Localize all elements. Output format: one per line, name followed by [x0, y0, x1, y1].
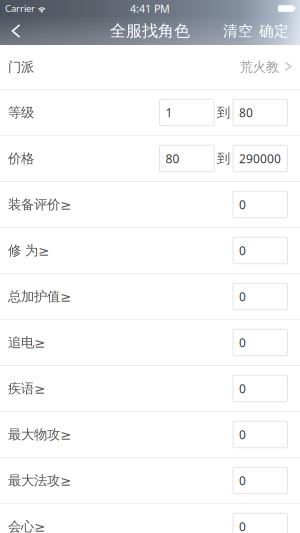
staticText: 80	[165, 150, 179, 166]
staticText: 最大法攻≥	[8, 472, 71, 489]
button[interactable]: Back	[0, 17, 32, 45]
staticText: 0	[239, 196, 246, 212]
staticText: 价格	[8, 150, 34, 167]
staticText: 4:41 PM	[130, 1, 170, 16]
button[interactable]: 确定	[256, 17, 292, 45]
staticText: 确定	[259, 22, 289, 40]
staticText: 荒火教	[240, 59, 279, 75]
button[interactable]: 门派	[0, 45, 300, 89]
staticText: 80	[239, 104, 253, 120]
staticText: 会心≥	[8, 518, 45, 533]
staticText: 290000	[239, 150, 281, 166]
staticText: 1	[165, 104, 172, 120]
staticText: 总加护值≥	[8, 288, 71, 305]
staticText: 清空	[223, 22, 253, 40]
staticText: 最大物攻≥	[8, 426, 71, 443]
staticText: 0	[239, 242, 246, 258]
button[interactable]: 清空	[220, 17, 256, 45]
staticText: 门派	[8, 59, 34, 75]
staticText: 修 为≥	[8, 242, 49, 259]
staticText: 0	[239, 426, 246, 442]
staticText: 全服找角色	[110, 21, 190, 41]
staticText: 到	[217, 150, 230, 167]
staticText: 0	[239, 472, 246, 488]
staticText: 疾语≥	[8, 380, 45, 397]
staticText: 0	[239, 334, 246, 350]
staticText: 装备评价≥	[8, 196, 71, 213]
staticText: 0	[239, 518, 246, 533]
staticText: 0	[239, 380, 246, 396]
staticText: 到	[217, 104, 230, 121]
staticText: 等级	[8, 104, 34, 121]
staticText: 追电≥	[8, 334, 45, 351]
staticText: Carrier	[5, 2, 35, 15]
staticText: 0	[239, 288, 246, 304]
